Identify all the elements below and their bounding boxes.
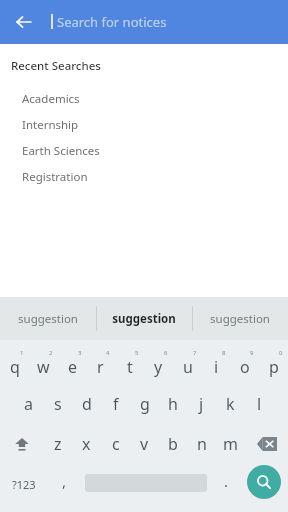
staticText: 5 (135, 349, 139, 357)
button[interactable]: f (101, 386, 130, 422)
staticText: y (154, 356, 163, 378)
button[interactable]: Internship (0, 112, 288, 138)
button[interactable]: a (14, 386, 43, 422)
staticText: m (223, 433, 238, 455)
button[interactable]: h (158, 386, 187, 422)
staticText: n (197, 433, 207, 455)
staticText: l (257, 393, 262, 415)
staticText: t (127, 356, 133, 378)
staticText: x (82, 433, 91, 455)
button[interactable]: v (130, 426, 159, 462)
staticText: j (199, 393, 204, 415)
staticText: 0 (279, 349, 283, 357)
button[interactable]: n (187, 426, 216, 462)
staticText: suggestion (112, 311, 176, 327)
staticText: p (269, 356, 279, 378)
staticText: f (113, 393, 119, 415)
button[interactable]: Delete (245, 426, 288, 462)
button[interactable]: 4 (86, 346, 115, 382)
button[interactable]: 3 (58, 346, 87, 382)
staticText: Recent Searches (11, 58, 101, 74)
button[interactable]: j (187, 386, 216, 422)
button[interactable]: 9 (230, 346, 259, 382)
button[interactable]: 8 (202, 346, 231, 382)
button[interactable]: l (245, 386, 274, 422)
staticText: suggestion (210, 311, 270, 327)
staticText: b (168, 433, 178, 455)
staticText: 2 (49, 349, 53, 357)
staticText: i (214, 356, 219, 378)
button[interactable]: 1 (0, 346, 29, 382)
button[interactable]: m (216, 426, 245, 462)
staticText: u (183, 356, 193, 378)
button[interactable]: ?123 (2, 466, 45, 502)
button[interactable]: suggestion (0, 297, 96, 340)
staticText: Internship (22, 117, 79, 133)
staticText: s (54, 393, 62, 415)
staticText: . (224, 471, 229, 491)
staticText: 9 (250, 349, 254, 357)
staticText: Earth Sciences (22, 143, 100, 159)
button[interactable]: s (43, 386, 72, 422)
staticText: ?123 (12, 477, 36, 492)
staticText: suggestion (18, 311, 78, 327)
button[interactable]: 2 (29, 346, 58, 382)
button[interactable]: Earth Sciences (0, 138, 288, 164)
button[interactable]: b (158, 426, 187, 462)
button[interactable]: c (101, 426, 130, 462)
staticText: h (168, 393, 178, 415)
button[interactable]: g (130, 386, 159, 422)
staticText: 3 (78, 349, 82, 357)
staticText: a (24, 393, 33, 415)
staticText: e (68, 356, 78, 378)
button[interactable]: Back (10, 8, 38, 36)
staticText: k (226, 393, 235, 415)
button[interactable]: 5 (115, 346, 144, 382)
button[interactable]: suggestion (192, 297, 288, 340)
staticText: g (140, 393, 150, 415)
button[interactable]: Search for notices (57, 13, 167, 31)
staticText: z (54, 433, 62, 455)
button[interactable]: x (72, 426, 101, 462)
button[interactable]: 0 (259, 346, 288, 382)
staticText: 1 (20, 349, 24, 357)
staticText: q (10, 356, 20, 378)
staticText: o (240, 356, 250, 378)
staticText: r (97, 356, 104, 378)
staticText: 7 (193, 349, 197, 357)
button[interactable]: Registration (0, 164, 288, 190)
staticText: d (82, 393, 92, 415)
button[interactable]: d (72, 386, 101, 422)
button[interactable]: k (216, 386, 245, 422)
staticText: , (62, 471, 67, 491)
button[interactable]: 7 (173, 346, 202, 382)
button[interactable]: z (43, 426, 72, 462)
button[interactable]: Academics (0, 86, 288, 112)
button[interactable]: 6 (144, 346, 173, 382)
staticText: 4 (106, 349, 110, 357)
button[interactable]: Period (211, 466, 241, 502)
button[interactable]: Shift (0, 426, 43, 462)
staticText: Registration (22, 169, 88, 185)
staticText: c (112, 433, 120, 455)
button[interactable]: Search (247, 465, 281, 499)
staticText: 8 (222, 349, 226, 357)
staticText: Academics (22, 91, 80, 107)
staticText: w (37, 356, 50, 378)
button[interactable]: suggestion (96, 297, 192, 340)
staticText: v (140, 433, 149, 455)
button[interactable]: Comma (48, 466, 80, 502)
staticText: 6 (164, 349, 168, 357)
staticText: Search for notices (57, 13, 167, 31)
